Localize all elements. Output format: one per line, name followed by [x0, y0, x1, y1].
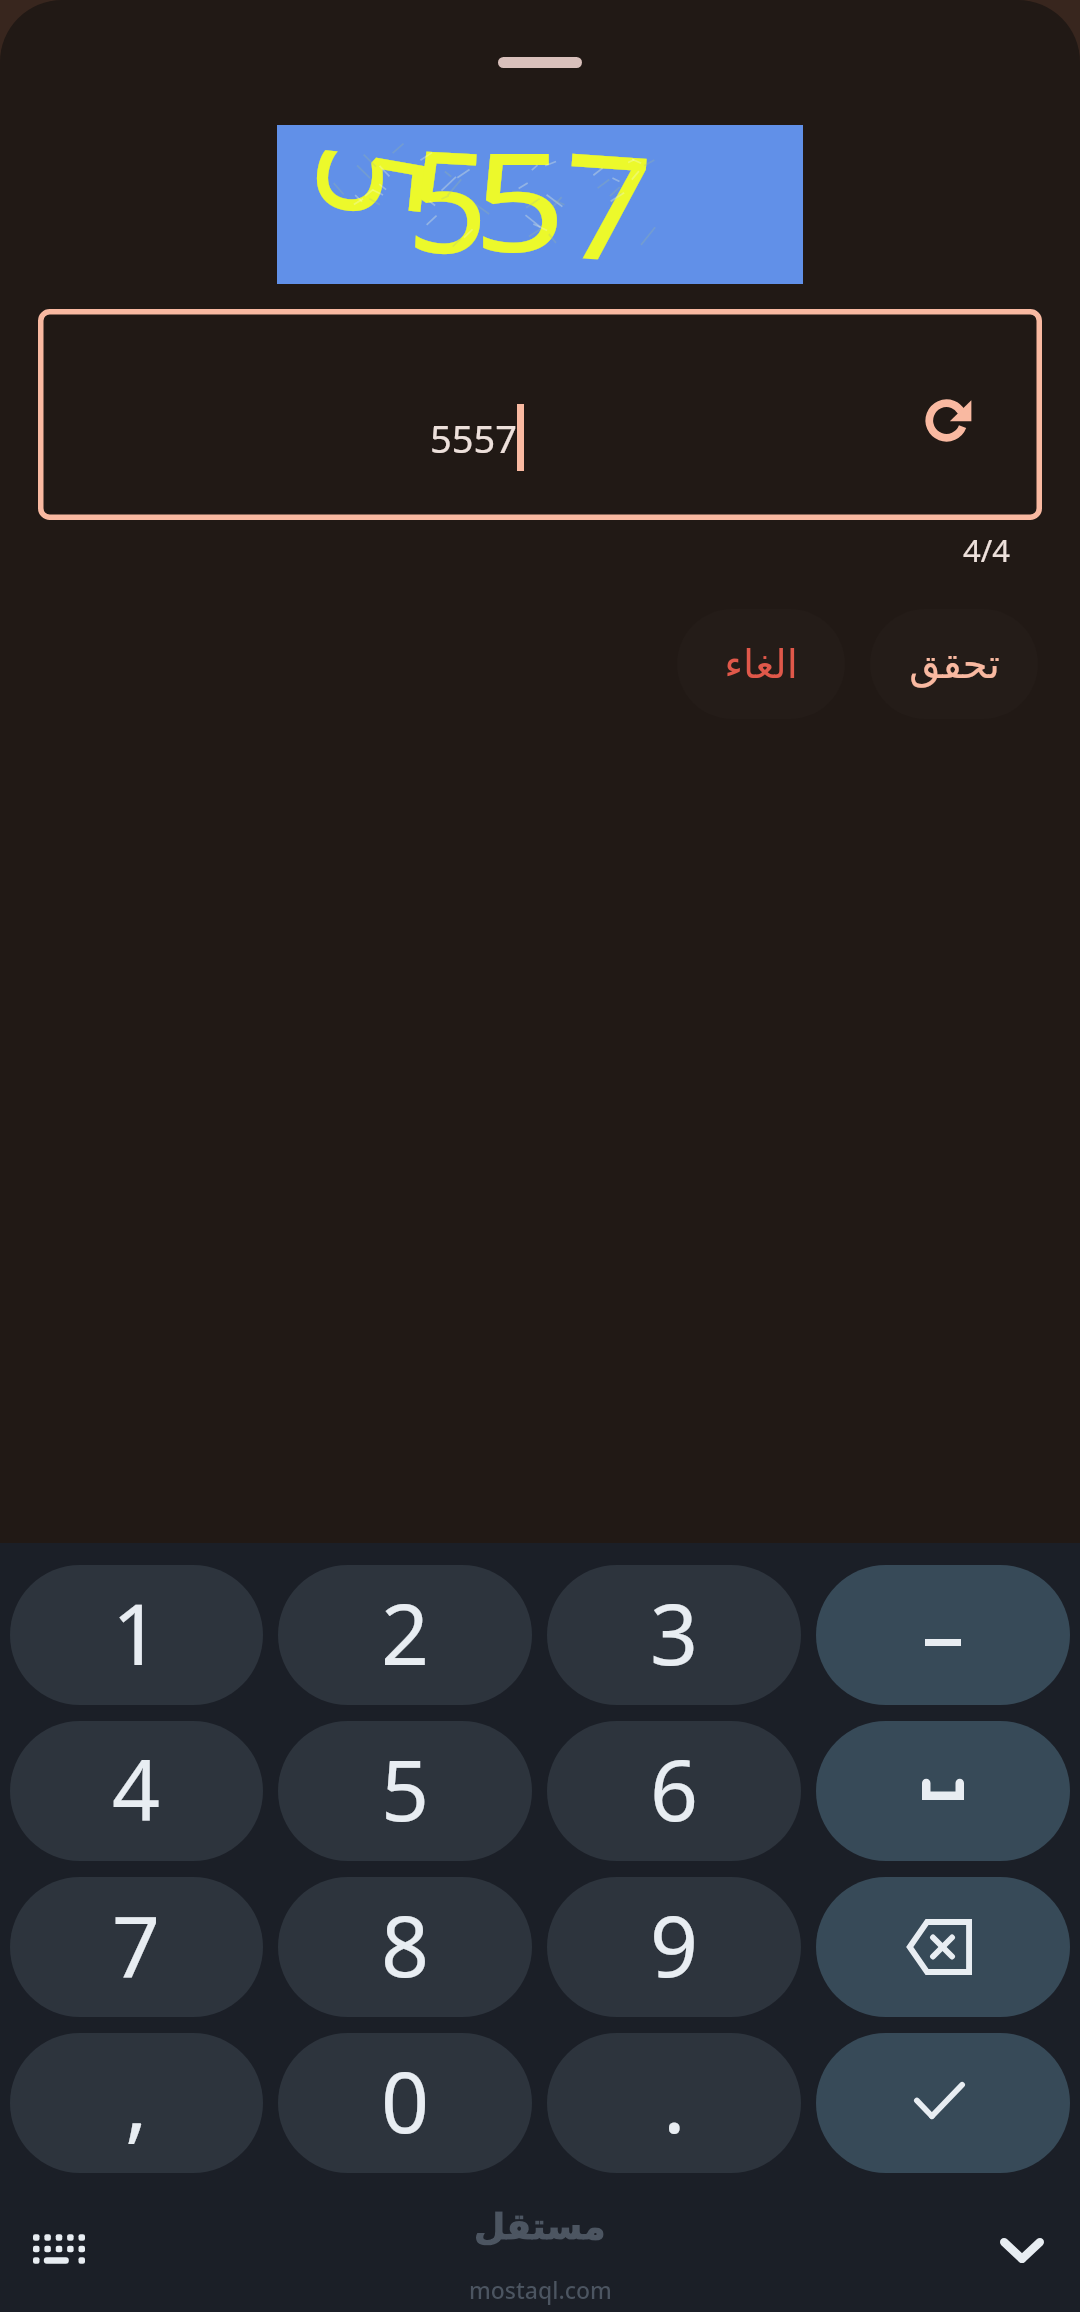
staticText: . — [663, 2043, 686, 2157]
staticText: 7 — [112, 1887, 161, 2001]
button[interactable]: الغاء — [677, 609, 845, 719]
button[interactable]: 1 — [10, 1565, 263, 1705]
staticText: 4 — [112, 1731, 161, 1845]
button[interactable]: تحقق — [870, 609, 1038, 719]
button[interactable]: 5557 — [38, 309, 1042, 520]
button[interactable]: Hide keyboard — [977, 2205, 1067, 2295]
button[interactable]: 7 — [10, 1877, 263, 2017]
button[interactable]: ok — [816, 2033, 1070, 2173]
button[interactable]: 6 — [547, 1721, 801, 1861]
button[interactable]: 2 — [278, 1565, 532, 1705]
staticText: الغاء — [724, 641, 798, 688]
staticText: 4/4 — [963, 529, 1010, 571]
staticText: mostaql.com — [469, 2274, 612, 2305]
button[interactable]: 9 — [547, 1877, 801, 2017]
staticText: 1 — [112, 1575, 161, 1689]
staticText: تحقق — [909, 641, 1000, 688]
staticText: 2 — [381, 1575, 430, 1689]
button[interactable]: Captcha image 5557 — [277, 125, 803, 284]
staticText: 5 — [381, 1731, 430, 1845]
staticText: 3 — [650, 1575, 699, 1689]
button[interactable]: . — [547, 2033, 801, 2173]
button[interactable]: minus — [816, 1565, 1070, 1705]
button[interactable]: 8 — [278, 1877, 532, 2017]
staticText: 0 — [381, 2043, 430, 2157]
staticText: 5557 — [430, 412, 517, 464]
button[interactable]: space — [816, 1721, 1070, 1861]
staticText: 8 — [381, 1887, 430, 2001]
button[interactable]: 4 — [10, 1721, 263, 1861]
button[interactable]: Switch keyboard — [14, 2204, 104, 2294]
staticText: مستقل — [474, 2206, 606, 2248]
staticText: 7 — [559, 98, 658, 263]
staticText: , — [125, 2043, 148, 2157]
button[interactable]: 5 — [278, 1721, 532, 1861]
button[interactable]: 3 — [547, 1565, 801, 1705]
staticText: 9 — [650, 1887, 699, 2001]
button[interactable]: Refresh captcha — [904, 378, 988, 462]
button[interactable]: , — [10, 2033, 263, 2173]
staticText: 5 — [406, 101, 495, 264]
staticText: 5 — [289, 139, 479, 232]
button[interactable]: del — [816, 1877, 1070, 2017]
staticText: 6 — [650, 1731, 699, 1845]
staticText: 5 — [473, 104, 566, 263]
button[interactable]: 0 — [278, 2033, 532, 2173]
